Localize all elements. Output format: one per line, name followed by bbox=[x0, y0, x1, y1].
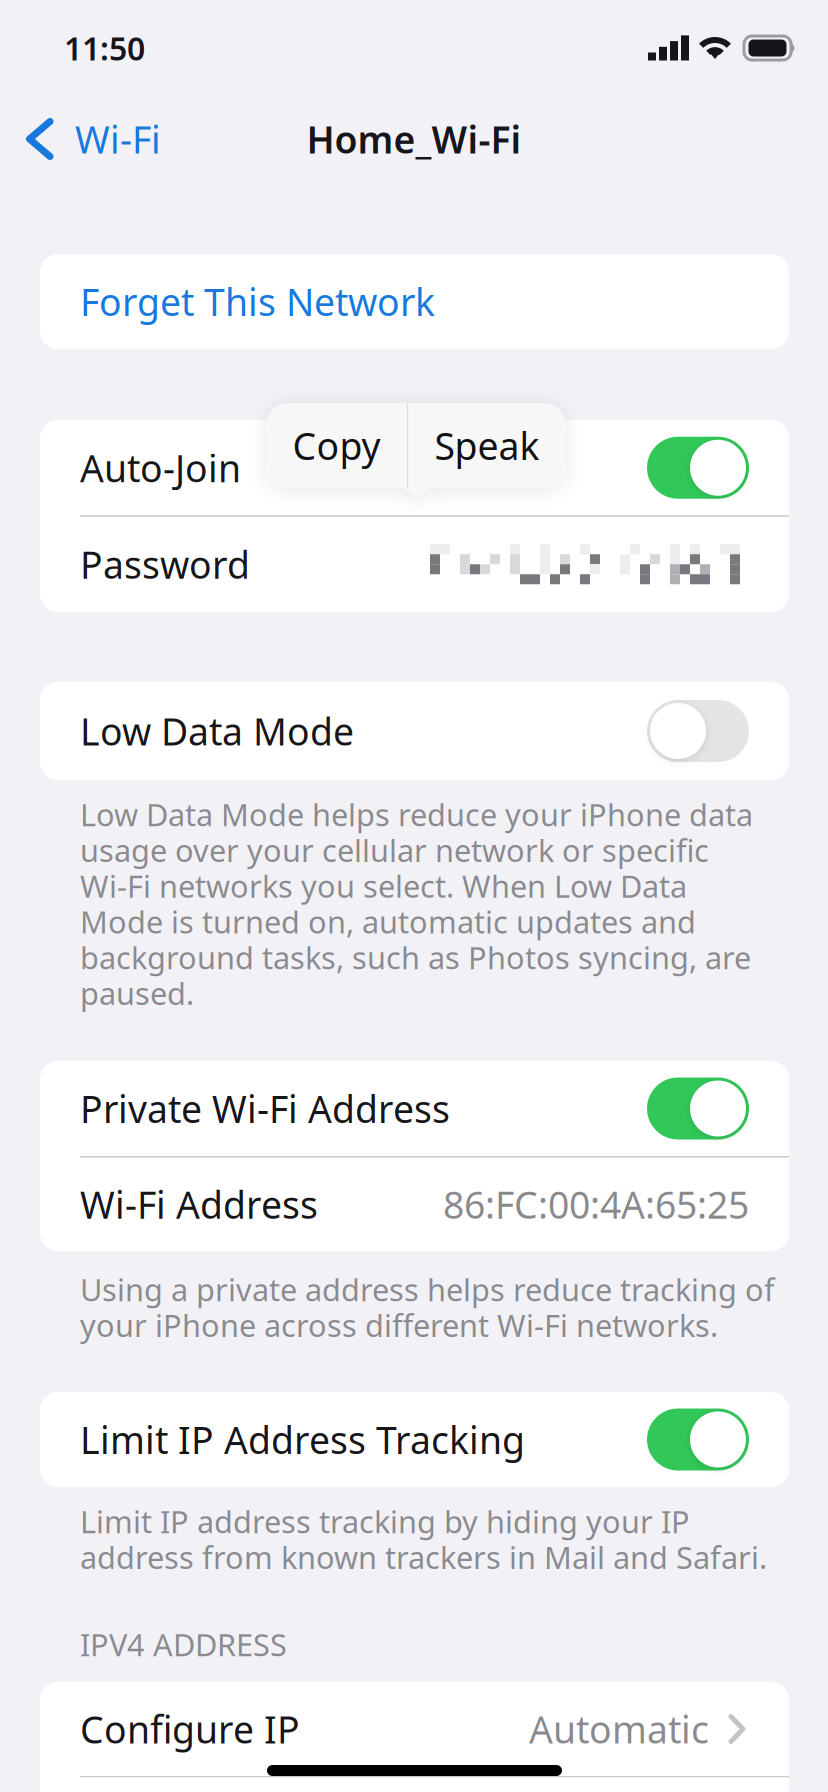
staticText: Password bbox=[80, 539, 250, 589]
button[interactable]: Copy bbox=[266, 403, 407, 488]
button[interactable]: Speak bbox=[408, 403, 566, 488]
button[interactable]: Forget This Network bbox=[40, 254, 789, 349]
staticText: Home_Wi-Fi bbox=[306, 114, 521, 164]
button[interactable]: Auto-Join bbox=[40, 420, 789, 515]
button[interactable]: Password bbox=[40, 517, 789, 612]
staticText: Limit IP Address Tracking bbox=[80, 1415, 525, 1464]
staticText: 11:50 bbox=[64, 27, 145, 69]
staticText: Auto-Join bbox=[80, 443, 241, 493]
button[interactable]: Wi-Fi bbox=[0, 100, 175, 178]
staticText: Configure IP bbox=[80, 1704, 300, 1754]
staticText: Forget This Network bbox=[80, 277, 435, 326]
staticText: Automatic bbox=[529, 1704, 709, 1754]
staticText: Limit IP address tracking by hiding your… bbox=[80, 1501, 767, 1577]
staticText: Wi-Fi Address bbox=[80, 1179, 318, 1229]
staticText: Low Data Mode helps reduce your iPhone d… bbox=[80, 794, 753, 1013]
staticText: Using a private address helps reduce tra… bbox=[80, 1269, 775, 1345]
staticText: IPV4 ADDRESS bbox=[80, 1624, 287, 1665]
staticText: Copy bbox=[292, 421, 380, 470]
staticText: Speak bbox=[435, 421, 540, 470]
staticText: Wi-Fi bbox=[75, 114, 161, 164]
staticText: 86:FC:00:4A:65:25 bbox=[443, 1179, 749, 1229]
staticText: Low Data Mode bbox=[80, 706, 354, 756]
staticText: Private Wi-Fi Address bbox=[80, 1084, 450, 1133]
button[interactable]: Configure IP bbox=[40, 1682, 789, 1776]
